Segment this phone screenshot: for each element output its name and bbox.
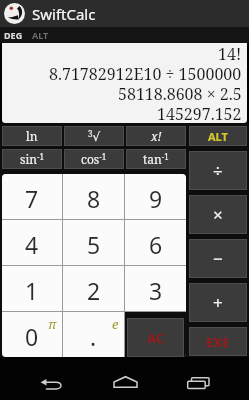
staticText: 58118.8608 × 2.5 <box>118 83 242 103</box>
staticText: 8 <box>87 183 101 214</box>
button[interactable]: ALT <box>189 126 247 146</box>
button[interactable]: ÷ <box>189 151 247 190</box>
staticText: EXE <box>206 333 230 351</box>
staticText: ÷ <box>213 159 223 182</box>
staticText: 2 <box>87 275 101 306</box>
button[interactable]: sin-1 <box>2 149 62 169</box>
button[interactable]: + <box>189 283 247 322</box>
button[interactable]: 9 <box>125 174 186 219</box>
staticText: 14! <box>218 43 242 63</box>
button[interactable]: 7 <box>2 174 62 219</box>
staticText: 4 <box>25 229 39 260</box>
button[interactable]: 3√ <box>64 126 124 146</box>
staticText: AC <box>147 329 165 347</box>
staticText: ALT <box>32 29 49 41</box>
button[interactable]: 1 <box>2 266 62 311</box>
staticText: 1 <box>25 275 39 306</box>
button[interactable] <box>40 379 62 390</box>
staticText: 3√ <box>88 128 101 144</box>
staticText: ln <box>26 128 38 144</box>
staticText: sin-1 <box>20 151 44 167</box>
button[interactable]: 2 <box>63 266 124 311</box>
button[interactable]: 6 <box>125 220 186 265</box>
staticText: × <box>213 203 223 226</box>
staticText: 145297.152 <box>157 103 242 123</box>
staticText: ALT <box>208 129 228 144</box>
button[interactable]: ln <box>2 126 62 146</box>
staticText: 0 <box>25 321 39 352</box>
staticText: 7 <box>25 183 39 214</box>
button[interactable]: cos-1 <box>64 149 124 169</box>
button[interactable]: − <box>189 239 247 278</box>
button[interactable]: 8 <box>63 174 124 219</box>
button[interactable]: tan-1 <box>126 149 186 169</box>
staticText: e <box>112 315 119 333</box>
staticText: − <box>213 247 223 270</box>
staticText: SwiftCalc <box>32 4 96 24</box>
staticText: tan-1 <box>143 151 169 167</box>
staticText: 9 <box>149 183 163 214</box>
staticText: cos-1 <box>81 151 107 167</box>
button[interactable] <box>187 377 210 389</box>
button[interactable]: 5 <box>63 220 124 265</box>
button[interactable]: x! <box>126 126 186 146</box>
staticText: 5 <box>87 229 101 260</box>
button[interactable]: 4 <box>2 220 62 265</box>
button[interactable]: 3 <box>125 266 186 311</box>
button[interactable] <box>113 376 138 388</box>
staticText: 3 <box>149 275 163 306</box>
staticText: π <box>48 315 57 333</box>
staticText: 8.71782912E10 ÷ 1500000 <box>49 63 242 83</box>
staticText: + <box>213 291 223 314</box>
staticText: DEG <box>4 29 23 41</box>
button[interactable]: AC <box>127 318 184 357</box>
staticText: . <box>90 321 97 352</box>
button[interactable]: EXE <box>189 327 247 356</box>
button[interactable]: . <box>63 312 124 357</box>
staticText: 6 <box>149 229 163 260</box>
button[interactable]: × <box>189 195 247 234</box>
button[interactable]: 0 <box>2 312 62 357</box>
staticText: x! <box>151 128 162 144</box>
